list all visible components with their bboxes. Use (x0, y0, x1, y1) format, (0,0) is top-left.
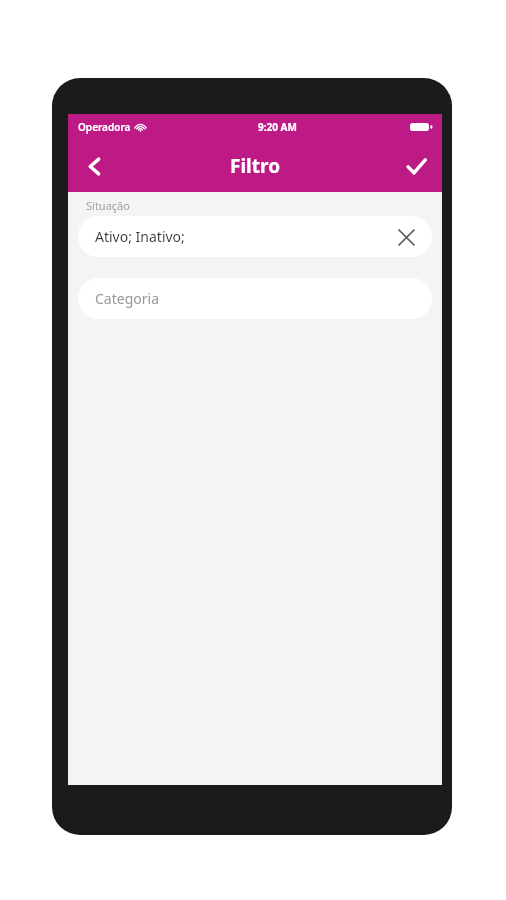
staticText: Situação (86, 198, 130, 213)
button[interactable]: Confirm (390, 140, 442, 192)
staticText: 9:20 AM (258, 120, 297, 134)
button[interactable]: Ativo; Inativo; (78, 216, 432, 257)
button[interactable]: Categoria (78, 278, 432, 319)
staticText: Categoria (95, 289, 159, 308)
staticText: Ativo; Inativo; (95, 227, 185, 246)
staticText: Filtro (230, 153, 281, 179)
button[interactable]: Clear (394, 225, 418, 249)
staticText: Operadora (78, 120, 131, 134)
button[interactable]: Back (68, 140, 120, 192)
